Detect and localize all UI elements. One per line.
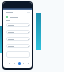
- button[interactable]: [6, 23, 30, 27]
- button[interactable]: [6, 51, 30, 58]
- button[interactable]: Tab 0: [7, 61, 11, 65]
- button[interactable]: [3, 2, 32, 10]
- button[interactable]: Tab 2: [17, 61, 21, 65]
- button[interactable]: Tab 4: [26, 61, 30, 65]
- button[interactable]: [6, 44, 30, 48]
- button[interactable]: Tab 3: [21, 61, 25, 65]
- button[interactable]: [6, 16, 30, 18]
- button[interactable]: Tab 1: [12, 61, 16, 65]
- button[interactable]: [6, 30, 30, 34]
- button[interactable]: [6, 37, 30, 41]
- button[interactable]: [6, 12, 30, 13]
